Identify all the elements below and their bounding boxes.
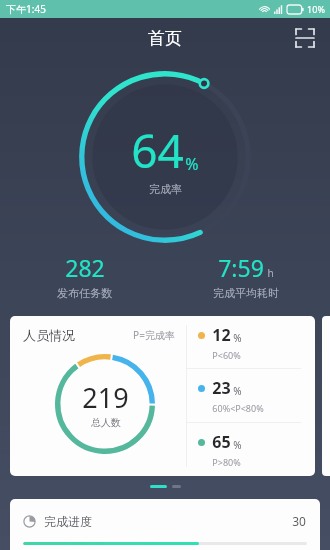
staticText: % xyxy=(233,384,242,398)
staticText: P>80% xyxy=(212,456,241,468)
staticText: 10% xyxy=(307,3,325,15)
staticText: 发布任务数 xyxy=(57,286,112,300)
staticText: 总人数 xyxy=(91,416,121,429)
staticText: % xyxy=(233,331,242,345)
staticText: 219 xyxy=(82,379,129,416)
staticText: 12 xyxy=(212,324,231,346)
staticText: h xyxy=(267,266,274,280)
button[interactable] xyxy=(172,485,181,488)
staticText: 65 xyxy=(212,431,231,453)
staticText: P<60% xyxy=(212,349,241,361)
staticText: 60%<P<80% xyxy=(212,402,264,414)
staticText: 完成率 xyxy=(149,182,182,196)
staticText: 64 xyxy=(131,119,184,182)
staticText: 30 xyxy=(292,513,306,529)
staticText: 人员情况 xyxy=(23,327,75,343)
staticText: 282 xyxy=(65,252,105,283)
button[interactable] xyxy=(322,316,330,476)
button[interactable]: 完成进度 xyxy=(10,499,320,550)
staticText: 完成进度 xyxy=(44,514,92,529)
button[interactable] xyxy=(150,485,167,488)
staticText: 7:59 xyxy=(218,252,264,283)
staticText: % xyxy=(185,153,199,175)
staticText: P=完成率 xyxy=(133,328,175,342)
staticText: % xyxy=(233,438,242,452)
button[interactable]: 人员情况 xyxy=(10,316,315,476)
staticText: 23 xyxy=(212,377,231,399)
staticText: 完成平均耗时 xyxy=(213,286,279,300)
staticText: 下午1:45 xyxy=(6,2,46,16)
staticText: 首页 xyxy=(148,28,182,49)
button[interactable]: Scan QR code xyxy=(289,22,321,54)
